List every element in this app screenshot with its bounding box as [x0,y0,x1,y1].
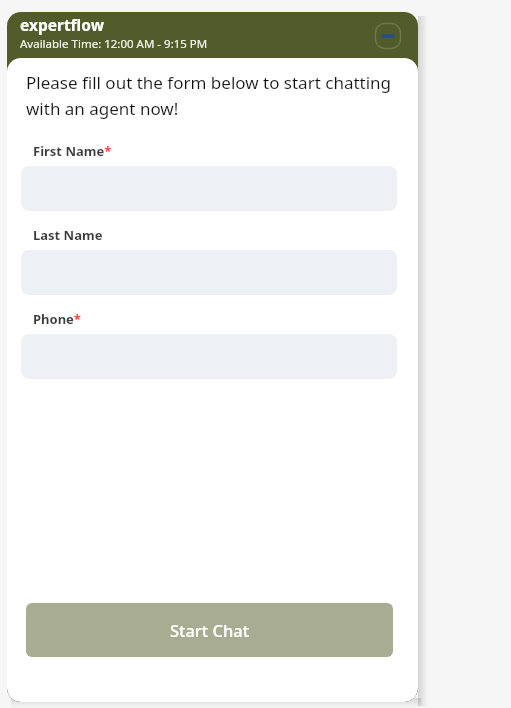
staticText: First Name* [33,142,112,160]
staticText: Available Time: 12:00 AM - 9:15 PM [20,36,208,52]
staticText: Phone* [33,310,81,328]
button[interactable]: Start Chat [26,603,393,657]
staticText: Start Chat [170,619,250,641]
staticText: Last Name [33,226,103,244]
staticText: Please fill out the form below to start … [26,71,398,120]
staticText: expertflow [20,14,104,35]
button[interactable]: Minimize chat [374,22,402,50]
